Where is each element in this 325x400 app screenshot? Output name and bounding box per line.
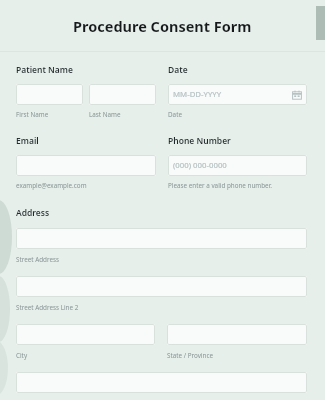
staticText: Address [16, 207, 50, 219]
staticText: Street Address Line 2 [16, 303, 79, 312]
staticText: Procedure Consent Form [73, 16, 252, 36]
button[interactable] [16, 84, 83, 105]
button[interactable]: MM-DD-YYYY [168, 84, 307, 105]
button[interactable] [16, 372, 307, 393]
staticText: example@example.com [16, 181, 87, 190]
staticText: Patient Name [16, 64, 73, 76]
staticText: Phone Number [168, 135, 231, 147]
staticText: MM-DD-YYYY [173, 89, 222, 100]
staticText: State / Province [167, 351, 213, 360]
staticText: City [16, 351, 28, 360]
button[interactable] [16, 276, 307, 297]
staticText: Please enter a valid phone number. [168, 181, 272, 190]
button[interactable] [16, 324, 155, 345]
button[interactable]: (000) 000-0000 [168, 155, 307, 176]
staticText: Last Name [89, 110, 121, 119]
staticText: First Name [16, 110, 49, 119]
staticText: (000) 000-0000 [173, 160, 227, 171]
button[interactable] [16, 228, 307, 249]
button[interactable] [89, 84, 156, 105]
button[interactable] [16, 155, 156, 176]
staticText: Email [16, 135, 39, 147]
staticText: Street Address [16, 255, 60, 264]
button[interactable]: Open calendar picker [292, 90, 302, 100]
button[interactable] [167, 324, 307, 345]
staticText: Date [168, 64, 188, 76]
staticText: Date [168, 110, 182, 119]
